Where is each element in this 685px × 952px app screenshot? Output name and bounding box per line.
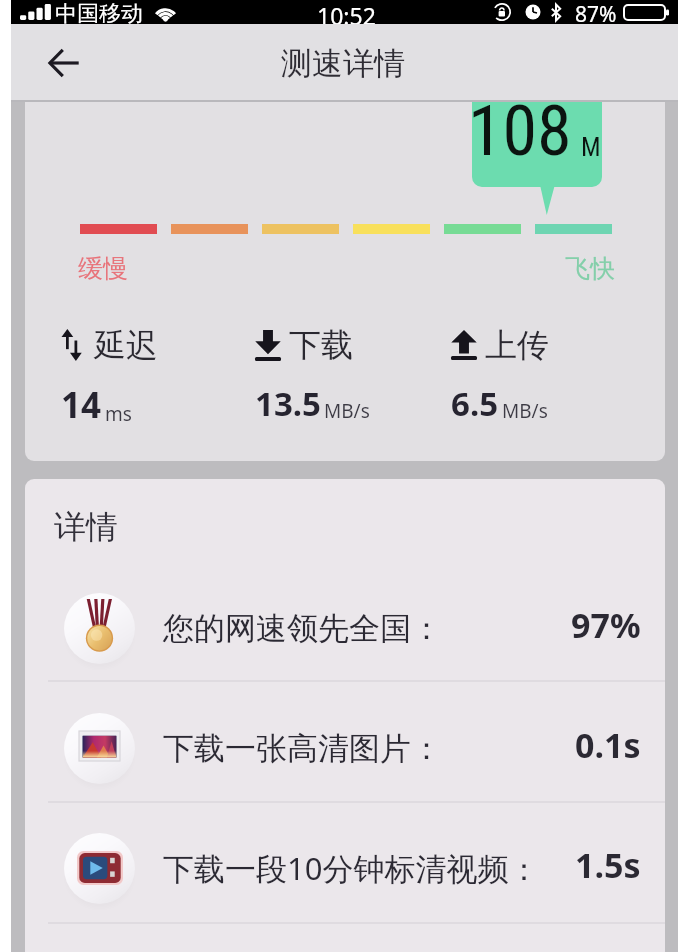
staticText: 详情 — [54, 507, 118, 547]
staticText: 缓慢 — [78, 253, 128, 284]
staticText: ms — [105, 401, 132, 427]
staticText: 1.5s — [575, 842, 641, 888]
staticText: 飞快 — [565, 253, 615, 284]
staticText: 延迟 — [94, 325, 158, 365]
button[interactable]: 下载一段10分钟标清视频： — [25, 808, 665, 928]
staticText: 下载 — [289, 325, 353, 365]
staticText: 14 — [61, 381, 102, 429]
staticText: 87% — [575, 0, 617, 24]
staticText: MB/s — [502, 398, 548, 424]
staticText: 97% — [571, 602, 641, 648]
staticText: 0.1s — [575, 722, 641, 768]
button[interactable]: Back — [40, 39, 88, 87]
staticText: 108 — [468, 102, 572, 172]
staticText: 6.5 — [451, 381, 499, 426]
staticText: M — [581, 132, 601, 162]
staticText: 测速详情 — [281, 44, 405, 83]
button[interactable]: 您的网速领先全国： — [25, 568, 665, 688]
button[interactable]: 下载一张高清图片： — [25, 688, 665, 808]
staticText: 下载一张高清图片： — [163, 729, 442, 768]
staticText: 上传 — [485, 325, 549, 365]
staticText: 下载一段10分钟标清视频： — [163, 847, 540, 889]
staticText: 您的网速领先全国： — [163, 609, 442, 648]
staticText: 10:52 — [317, 0, 376, 24]
staticText: MB/s — [324, 398, 370, 424]
staticText: 中国移动 — [55, 0, 143, 24]
staticText: 13.5 — [255, 381, 321, 426]
